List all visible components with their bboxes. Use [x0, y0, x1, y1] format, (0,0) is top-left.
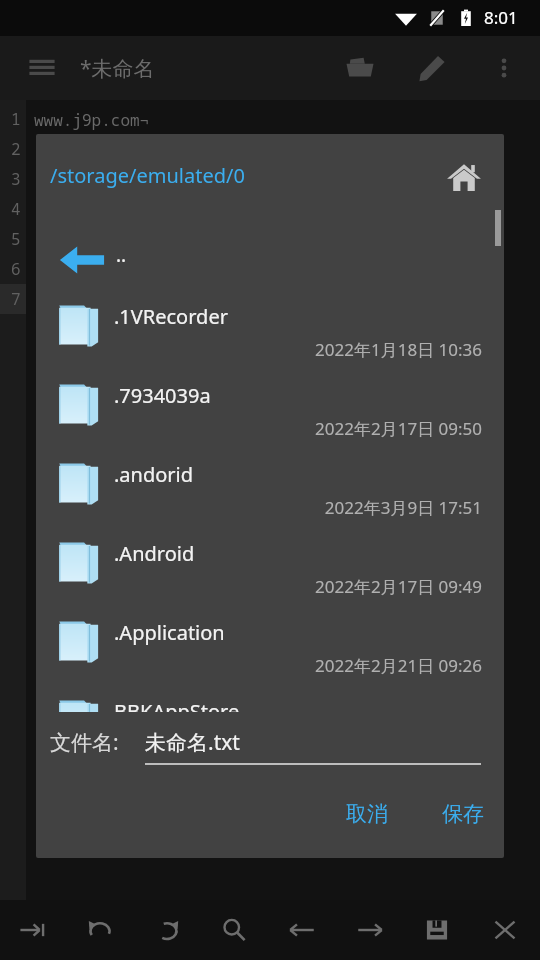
staticText: 2022年2月17日 09:50: [36, 417, 482, 440]
button[interactable]: .7934039a: [36, 369, 504, 448]
staticText: 2022年3月9日 17:51: [36, 496, 482, 519]
button[interactable]: Back: [278, 900, 326, 960]
button[interactable]: BBKAppStore: [36, 685, 504, 712]
staticText: ..: [116, 242, 127, 268]
staticText: *未命名: [80, 54, 155, 83]
button[interactable]: Tab: [9, 900, 57, 960]
staticText: /storage/emulated/0: [50, 162, 245, 189]
button[interactable]: Redo: [143, 900, 191, 960]
staticText: 7: [11, 288, 21, 310]
button[interactable]: .andorid: [36, 448, 504, 527]
button[interactable]: Up: [36, 212, 504, 290]
staticText: 6: [11, 258, 21, 280]
staticText: .Android: [114, 540, 195, 567]
button[interactable]: Save: [413, 900, 461, 960]
button[interactable]: .Application: [36, 606, 504, 685]
staticText: 1: [11, 108, 21, 130]
button[interactable]: Forward: [346, 900, 394, 960]
button[interactable]: More options: [480, 44, 528, 92]
button[interactable]: Home: [438, 152, 490, 204]
staticText: 2022年2月21日 09:26: [36, 654, 482, 677]
button[interactable]: Undo: [76, 900, 124, 960]
staticText: BBKAppStore: [114, 698, 240, 712]
staticText: 4: [11, 198, 21, 220]
staticText: www.j9p.com¬: [34, 109, 150, 131]
button[interactable]: .1VRecorder: [36, 290, 504, 369]
other: Up: [58, 236, 106, 284]
button[interactable]: 取消: [332, 788, 402, 840]
staticText: 2: [11, 138, 21, 160]
staticText: .7934039a: [114, 382, 211, 409]
staticText: .Application: [114, 619, 225, 646]
staticText: .1VRecorder: [114, 303, 228, 330]
staticText: 文件名:: [50, 728, 119, 757]
staticText: 2022年1月18日 10:36: [36, 338, 482, 361]
staticText: .andorid: [114, 461, 194, 488]
staticText: 2022年2月17日 09:49: [36, 575, 482, 598]
staticText: 3: [11, 168, 21, 190]
button[interactable]: .Android: [36, 527, 504, 606]
staticText: 取消: [346, 801, 388, 827]
staticText: 未命名.txt: [145, 728, 240, 757]
button[interactable]: Close: [481, 900, 529, 960]
button[interactable]: Search: [210, 900, 258, 960]
staticText: 保存: [442, 801, 484, 827]
button[interactable]: Menu: [18, 44, 66, 92]
button[interactable]: Edit: [408, 44, 456, 92]
staticText: 8:01: [484, 6, 518, 29]
staticText: 5: [11, 228, 21, 250]
button[interactable]: 保存: [428, 788, 498, 840]
button[interactable]: Open: [336, 44, 384, 92]
